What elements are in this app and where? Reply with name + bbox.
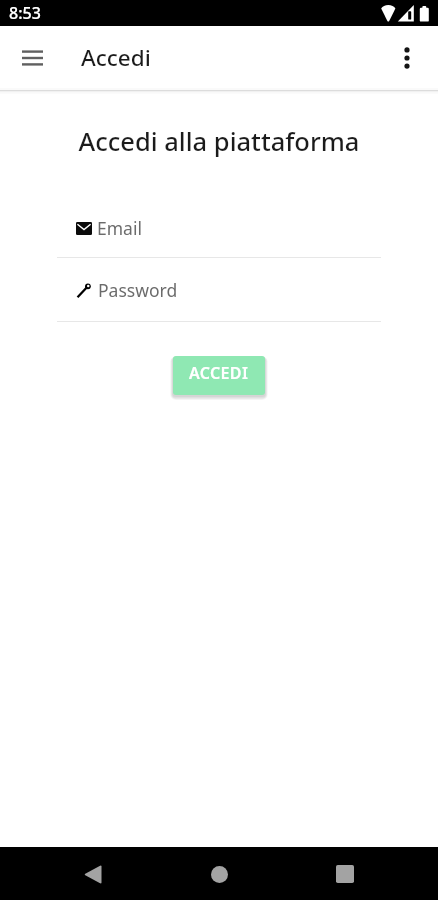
button[interactable]: Recent apps: [323, 852, 367, 896]
staticText: 8:53: [9, 2, 41, 24]
staticText: Email: [97, 216, 142, 240]
staticText: Password: [98, 278, 178, 302]
button[interactable]: Home: [197, 852, 241, 896]
button[interactable]: Open navigation menu: [0, 26, 64, 88]
button[interactable]: Back: [71, 852, 115, 896]
button[interactable]: More options: [381, 31, 433, 83]
staticText: Accedi alla piattaforma: [0, 124, 438, 159]
staticText: Accedi: [81, 42, 151, 73]
button[interactable]: Password: [57, 278, 381, 322]
button[interactable]: Email: [57, 216, 381, 258]
staticText: ACCEDI: [189, 362, 249, 384]
button[interactable]: ACCEDI: [173, 356, 265, 395]
